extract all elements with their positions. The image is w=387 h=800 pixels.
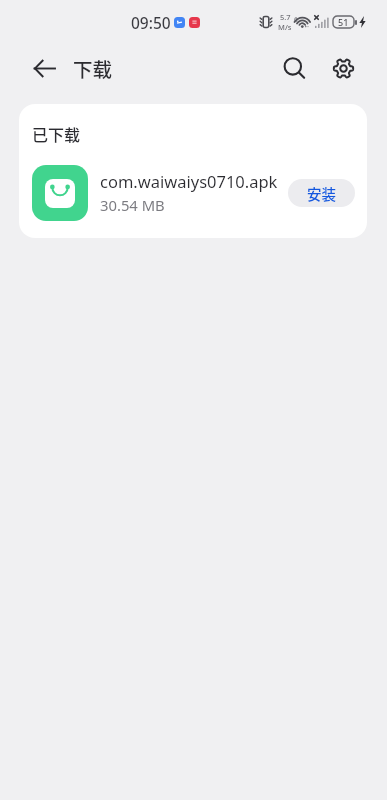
staticText: 51 (338, 16, 349, 28)
staticText: 已下载 (32, 122, 81, 145)
staticText: 5.7 (280, 12, 291, 22)
button[interactable]: Back (22, 54, 66, 82)
staticText: com.waiwaiys0710.apk (100, 170, 278, 192)
staticText: M/s (278, 22, 292, 32)
staticText: 09:50 (131, 12, 171, 33)
button[interactable]: Settings (327, 52, 359, 84)
staticText: 下载 (73, 54, 113, 82)
button[interactable]: com.waiwaiys0710.apk (32, 165, 355, 221)
staticText: 30.54 MB (100, 195, 165, 215)
button[interactable]: Search (278, 52, 310, 84)
button[interactable]: 安装 (288, 179, 355, 207)
staticText: 安装 (307, 183, 336, 204)
staticText: 6 (294, 15, 298, 24)
